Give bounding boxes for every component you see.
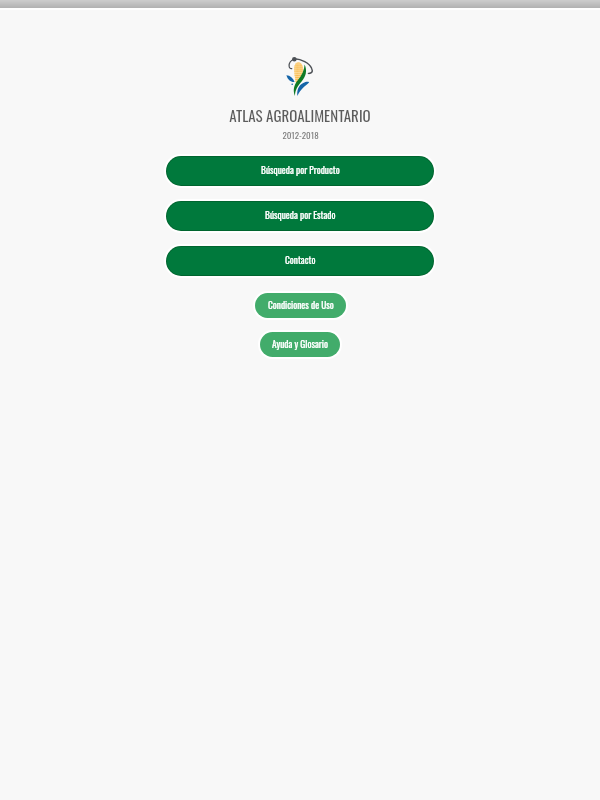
staticText: Contacto <box>285 253 316 267</box>
staticText: 2012-2018 <box>282 128 319 141</box>
button[interactable]: Búsqueda por Producto <box>164 154 436 188</box>
staticText: Búsqueda por Producto <box>261 163 340 177</box>
button[interactable]: Contacto <box>164 244 436 278</box>
button[interactable]: Condiciones de Uso <box>253 291 348 320</box>
other: Atlas Agroalimentario logo <box>286 52 314 96</box>
staticText: Ayuda y Glosario <box>272 337 328 351</box>
staticText: ATLAS AGROALIMENTARIO <box>229 104 371 126</box>
staticText: Búsqueda por Estado <box>265 208 336 222</box>
button[interactable]: Búsqueda por Estado <box>164 199 436 233</box>
staticText: Condiciones de Uso <box>268 298 334 312</box>
button[interactable]: Ayuda y Glosario <box>258 330 342 359</box>
